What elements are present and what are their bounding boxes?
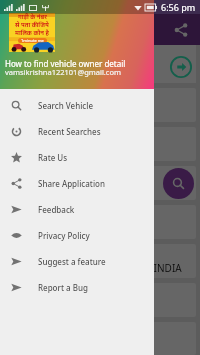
button[interactable] (4, 45, 196, 83)
button[interactable]: गाड़ी के नंबर (9, 13, 55, 52)
staticText: 1minute me (21, 38, 44, 43)
button[interactable]: Search Vehicle (0, 92, 154, 118)
staticText: Share Application (38, 178, 105, 189)
button[interactable] (4, 322, 196, 355)
staticText: 6:56 pm (161, 1, 196, 13)
button[interactable]: Search (163, 168, 194, 199)
button[interactable]: Privacy Policy (0, 222, 154, 248)
button[interactable]: Recent Searches (0, 118, 154, 144)
staticText: Privacy Policy (38, 230, 90, 241)
staticText: ANDHRA PRADESH, INDIA (60, 261, 182, 275)
button[interactable]: ANDHRA PRADESH, INDIA (4, 244, 196, 278)
staticText: गाड़ी के नंबर (18, 13, 47, 21)
staticText: Report a Bug (38, 282, 88, 293)
button[interactable] (4, 88, 196, 122)
staticText: Search Vehicle (38, 100, 94, 111)
staticText: Feedback (38, 204, 75, 215)
button[interactable]: Report a Bug (0, 274, 154, 300)
staticText: Recent Searches (38, 126, 101, 137)
staticText: How to find vehicle owner detail (5, 58, 126, 69)
staticText: से पता कीजिये (15, 21, 49, 29)
button[interactable]: Suggest a feature (0, 248, 154, 274)
staticText: Rate Us (38, 152, 68, 163)
staticText: मालिक कौन है (15, 29, 49, 37)
button[interactable] (4, 127, 196, 161)
staticText: vamsikrishna122101@gmail.com (5, 67, 122, 77)
button[interactable]: Rate Us (0, 144, 154, 170)
button[interactable]: Share (171, 20, 191, 40)
staticText: Suggest a feature (38, 256, 106, 267)
button[interactable]: Share Application (0, 170, 154, 196)
button[interactable]: Feedback (0, 196, 154, 222)
button[interactable] (4, 283, 196, 317)
button[interactable] (4, 166, 196, 200)
button[interactable] (4, 205, 196, 239)
